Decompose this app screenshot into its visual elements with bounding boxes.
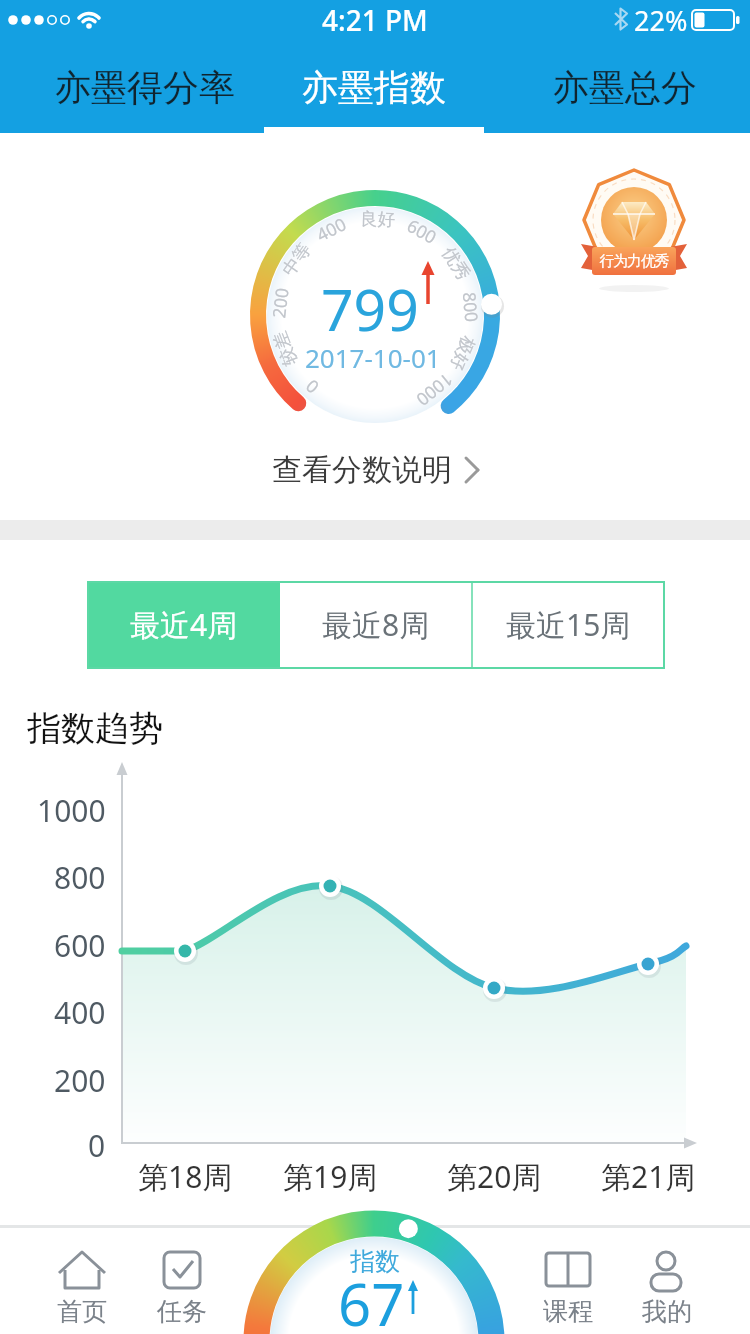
staticText: 亦墨指数 (302, 65, 446, 110)
staticText: 中等 (277, 239, 315, 280)
staticText: 良好 (360, 208, 395, 230)
staticText: 亦墨得分率 (55, 65, 235, 110)
button[interactable] (260, 1230, 490, 1334)
staticText: 查看分数说明 (272, 451, 452, 489)
button[interactable] (30, 40, 260, 133)
staticText: 67 (338, 1264, 405, 1334)
button[interactable] (20, 1240, 145, 1334)
staticText: 200 (54, 1060, 106, 1101)
button[interactable] (88, 582, 280, 668)
staticText: 课程 (543, 1296, 593, 1327)
staticText: 最近8周 (322, 604, 430, 645)
button[interactable] (510, 40, 740, 133)
staticText: 1000 (37, 790, 106, 831)
staticText: 第20周 (447, 1156, 542, 1197)
button[interactable] (472, 582, 664, 668)
staticText: 800 (458, 291, 484, 324)
staticText: 4:21 PM (322, 1, 428, 39)
staticText: 799 (321, 270, 419, 348)
staticText: 亦墨总分 (553, 65, 697, 110)
button[interactable] (510, 1240, 620, 1334)
staticText: 0 (300, 374, 324, 399)
staticText: 600 (403, 213, 442, 249)
staticText: 400 (54, 992, 106, 1033)
staticText: 第18周 (138, 1156, 233, 1197)
staticText: 首页 (57, 1296, 107, 1327)
staticText: 指数 (350, 1246, 400, 1277)
staticText: 较差 (268, 328, 301, 369)
staticText: 0 (88, 1125, 106, 1166)
button[interactable] (262, 40, 486, 133)
staticText: 指数趋势 (27, 707, 163, 750)
staticText: 第21周 (601, 1156, 696, 1197)
button[interactable] (130, 1240, 240, 1334)
button[interactable] (280, 443, 490, 497)
staticText: 22% (634, 2, 688, 39)
staticText: 极好 (446, 333, 480, 374)
staticText: 2017-10-01 (305, 340, 441, 375)
staticText: 行为力优秀 (600, 252, 669, 271)
staticText: 400 (312, 211, 351, 246)
staticText: 200 (266, 286, 294, 319)
staticText: 1000 (411, 368, 458, 413)
staticText: 最近4周 (130, 604, 238, 645)
staticText: 第19周 (283, 1156, 378, 1197)
staticText: 800 (54, 857, 106, 898)
staticText: 最近15周 (506, 604, 631, 645)
button[interactable] (620, 1240, 730, 1334)
staticText: 600 (54, 925, 106, 966)
staticText: 优秀 (437, 243, 475, 284)
button[interactable] (280, 582, 472, 668)
staticText: 任务 (157, 1296, 207, 1327)
staticText: 我的 (642, 1296, 692, 1327)
